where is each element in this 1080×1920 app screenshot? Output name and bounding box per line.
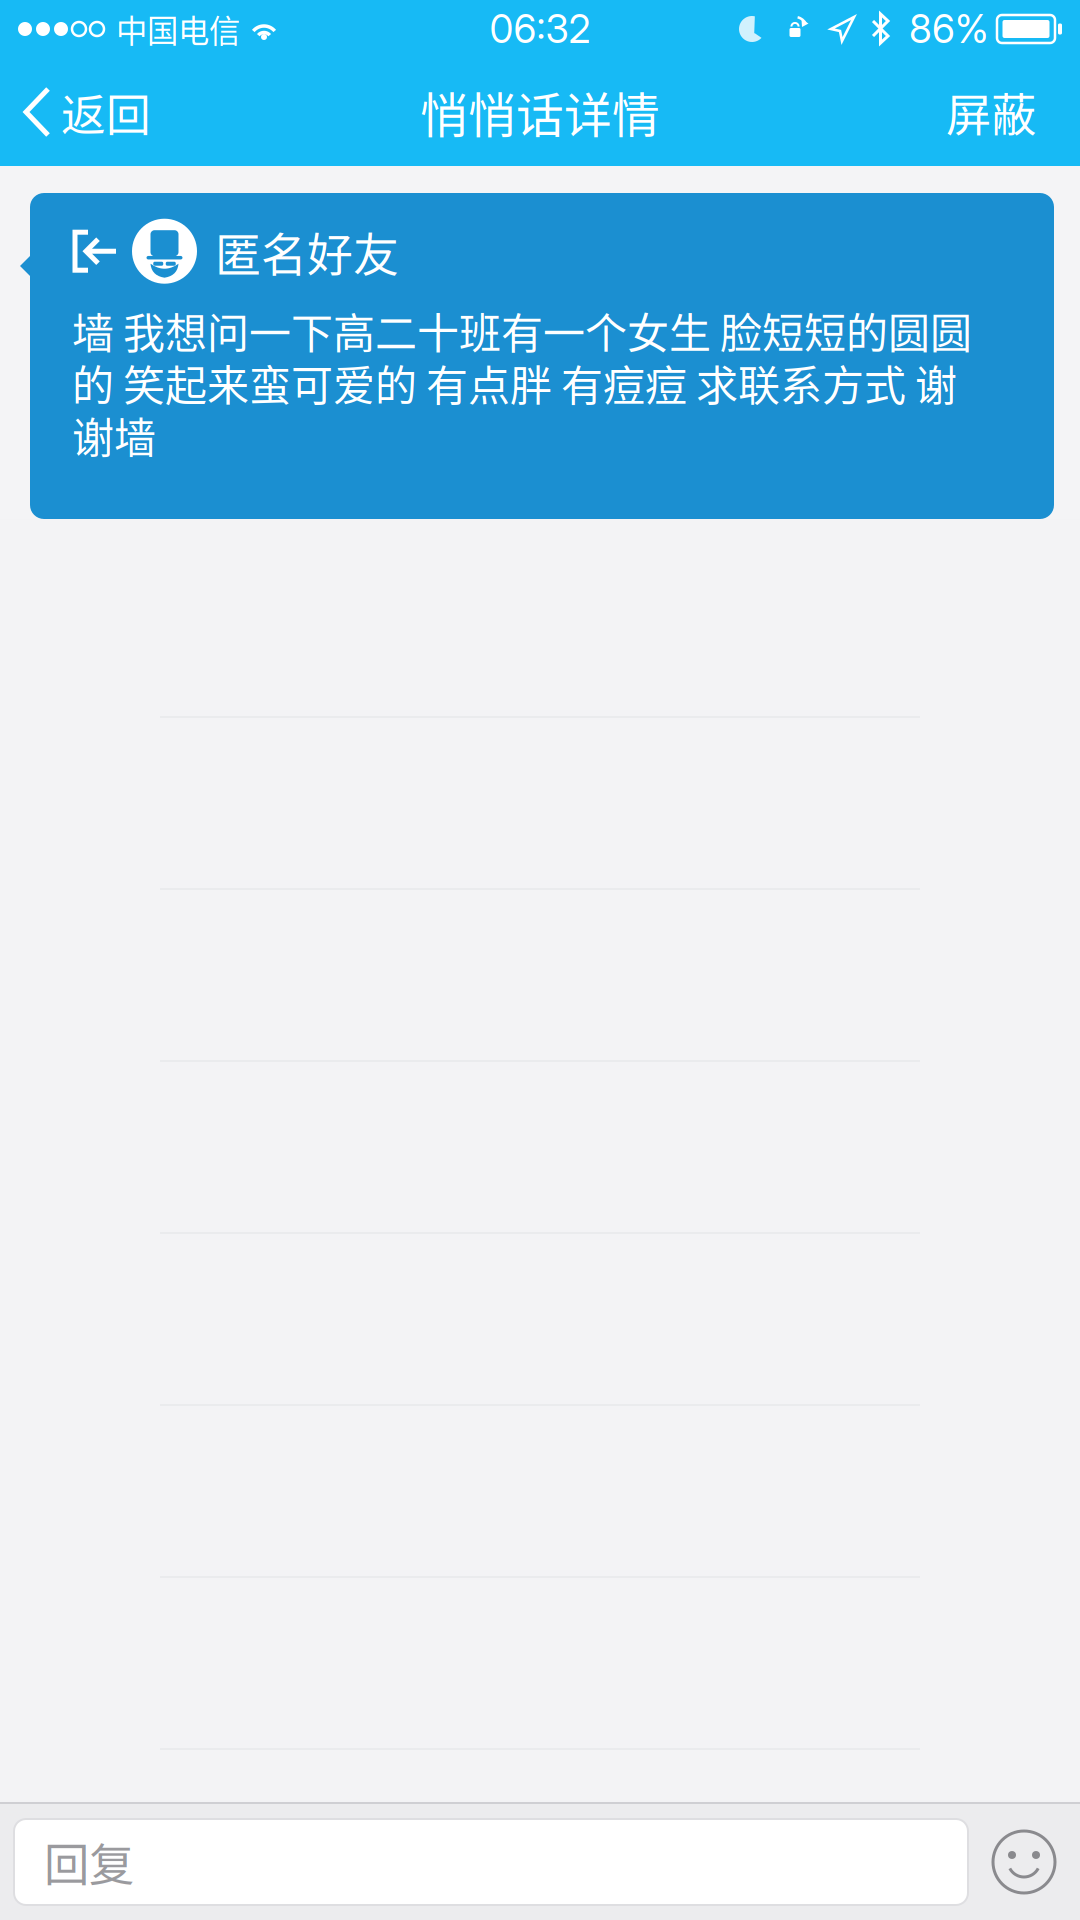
button[interactable]: 屏蔽 [916,58,1080,166]
staticText: 墙 我想问一下高二十班有一个女生 脸短短的圆圆 的 笑起来蛮可爱的 有点胖 有痘… [72,304,972,461]
staticText: 回复 [44,1829,134,1895]
staticText: 悄悄话详情 [420,77,660,146]
button[interactable]: 回复 [14,1819,968,1905]
staticText: 匿名好友 [215,218,399,284]
staticText: 中国电信 [116,6,240,52]
button[interactable]: 返回 [0,58,173,166]
staticText: 86% [909,6,989,52]
staticText: 返回 [61,80,151,144]
button[interactable]: Emoji keyboard [968,1812,1080,1912]
staticText: 屏蔽 [946,79,1036,145]
button[interactable]: 匿名好友 [0,166,1080,519]
staticText: 06:32 [489,6,590,52]
